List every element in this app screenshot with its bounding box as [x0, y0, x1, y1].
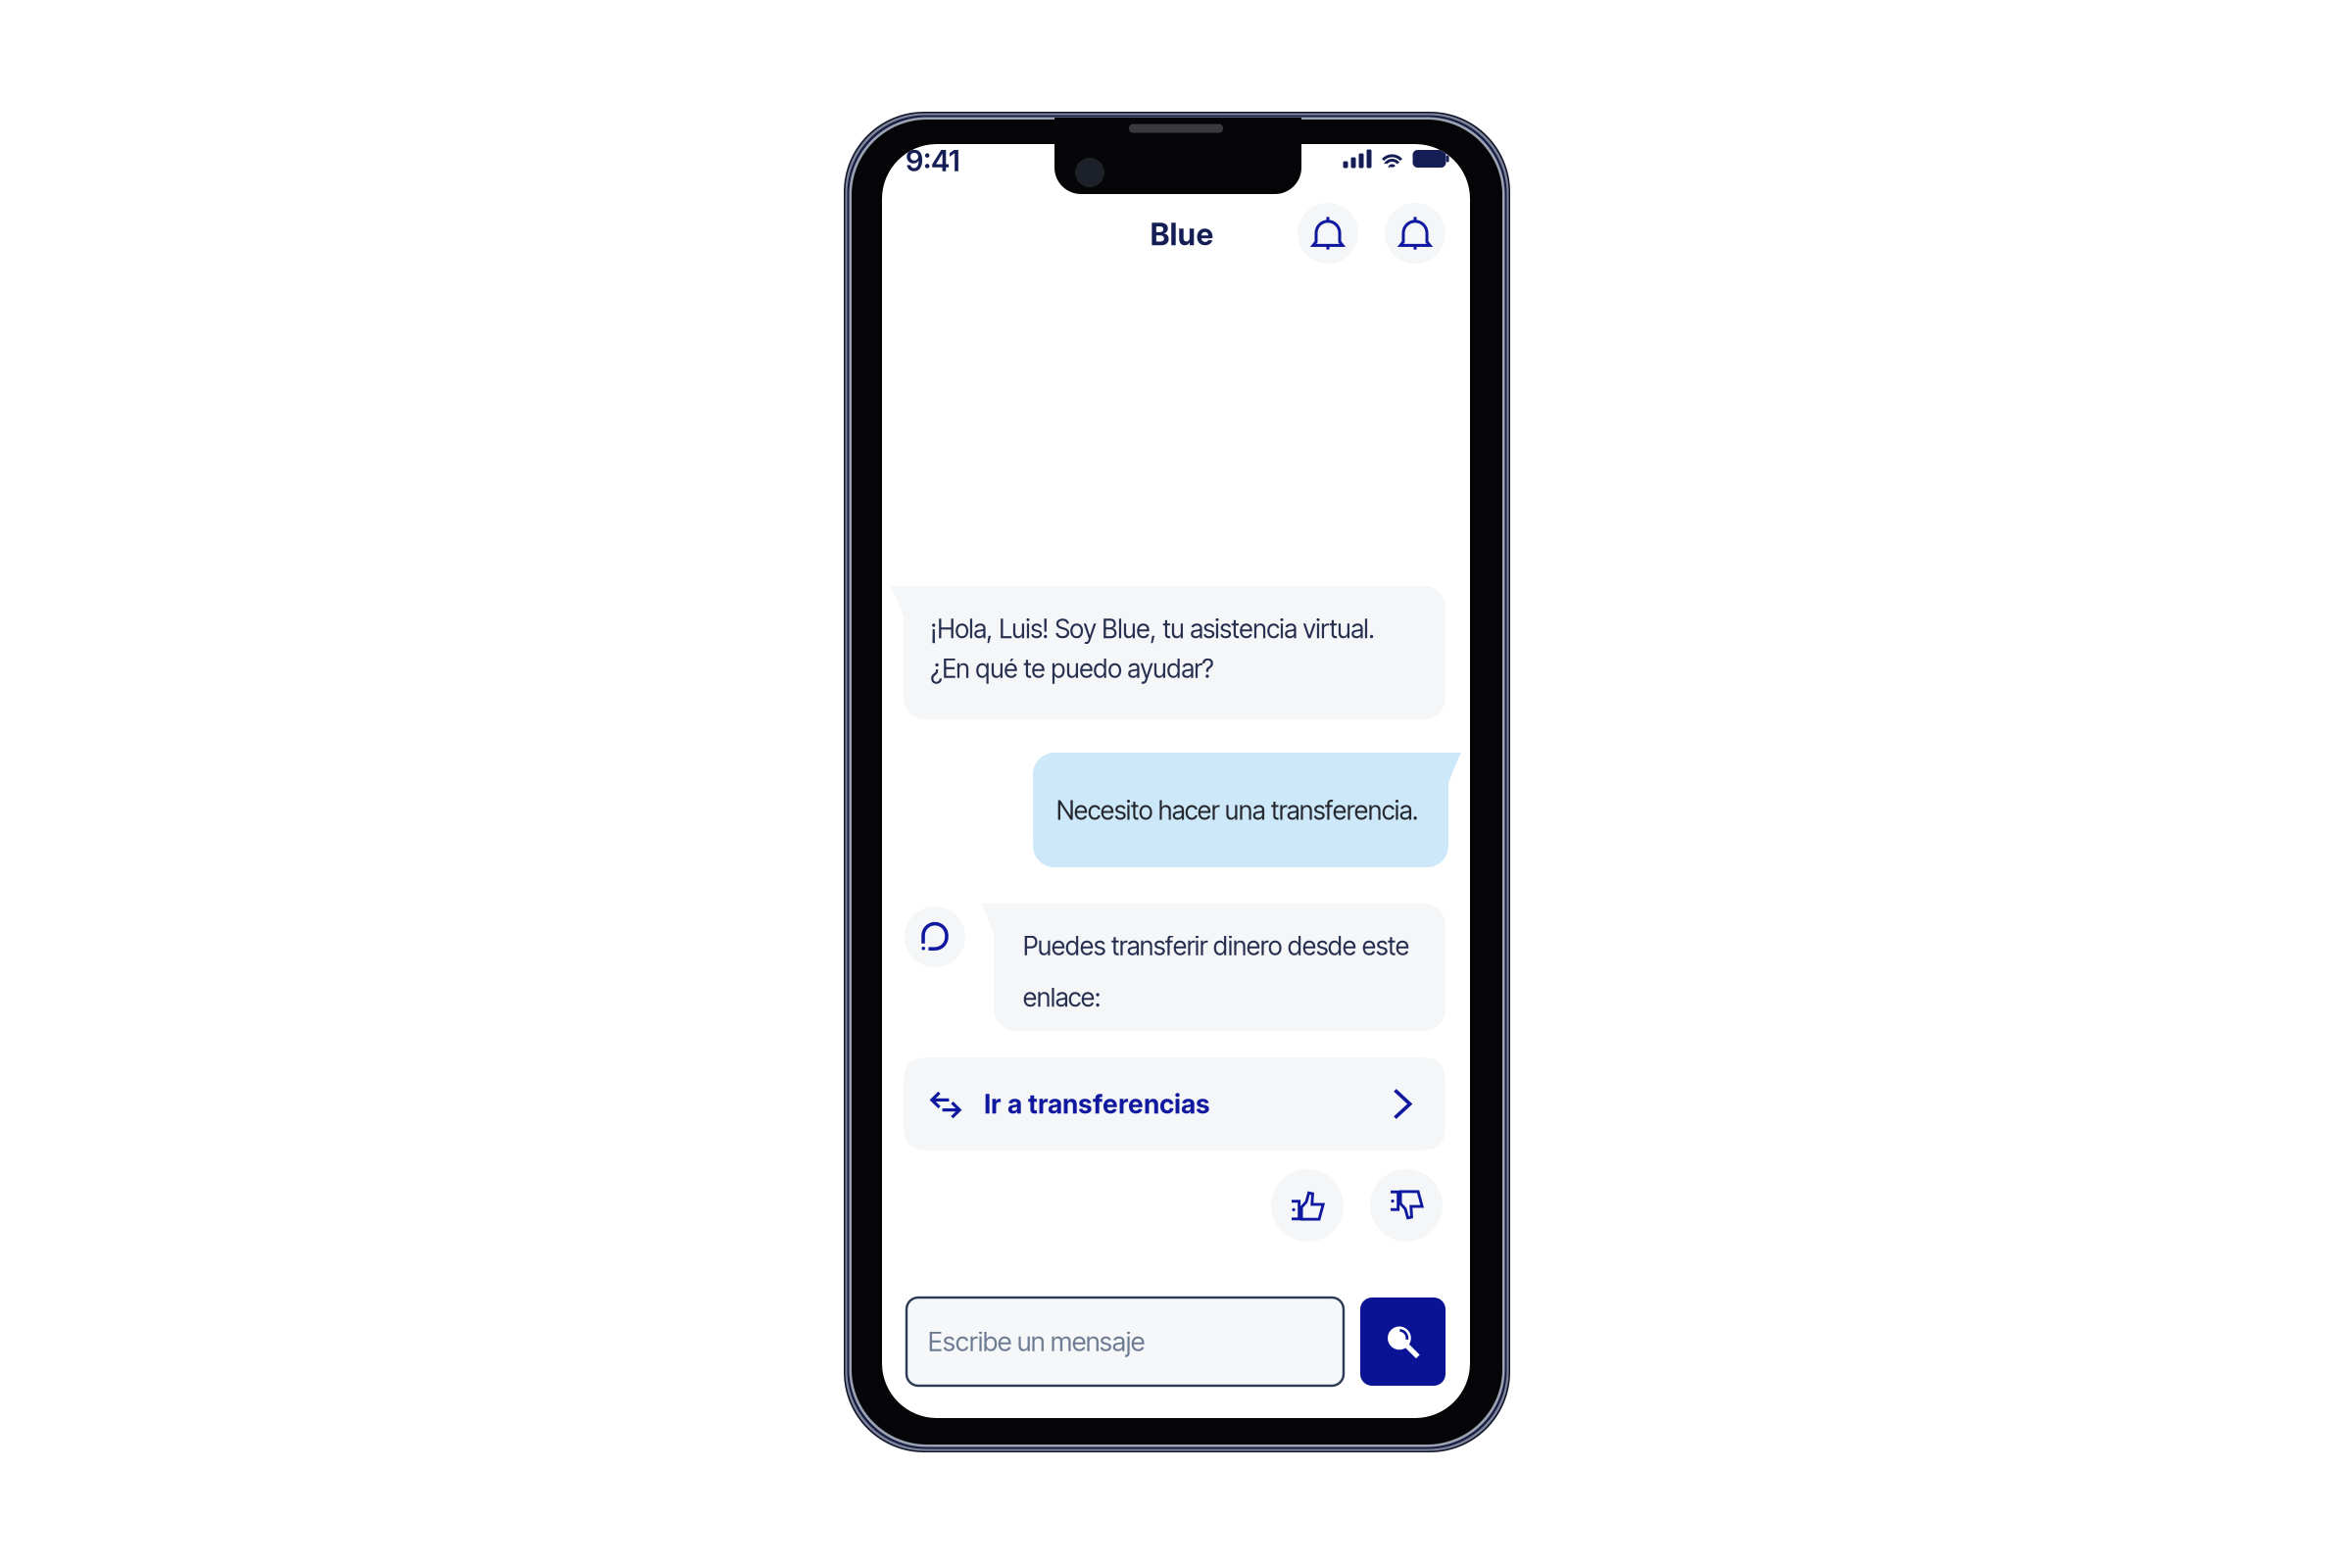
button[interactable]: Not helpful: [1370, 1169, 1443, 1242]
staticText: ¿En qué te puedo ayudar?: [931, 653, 1214, 684]
staticText: ¡Hola, Luis! Soy Blue, tu asistencia vir…: [931, 613, 1374, 644]
staticText: 9:41: [906, 143, 960, 178]
button[interactable]: Alerts: [1385, 203, 1445, 264]
staticText: Escribe un mensaje: [928, 1326, 1145, 1357]
button[interactable]: Ir a transferencias: [904, 1057, 1445, 1151]
button[interactable]: Helpful: [1271, 1169, 1344, 1242]
button[interactable]: Notifications: [1298, 203, 1358, 264]
button[interactable]: Search: [1360, 1298, 1445, 1386]
staticText: enlace:: [1023, 982, 1101, 1013]
staticText: Necesito hacer una transferencia.: [1056, 795, 1418, 826]
staticText: Puedes transferir dinero desde este: [1023, 931, 1409, 961]
staticText: Blue: [1150, 216, 1214, 252]
button[interactable]: Escribe un mensaje: [906, 1298, 1344, 1386]
staticText: Ir a transferencias: [984, 1088, 1210, 1120]
